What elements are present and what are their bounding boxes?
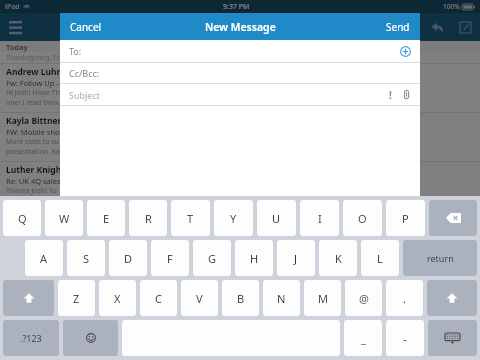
staticText: O — [358, 211, 367, 226]
button[interactable]: Send — [376, 14, 420, 40]
staticText: C — [155, 291, 162, 306]
staticText: I — [318, 211, 322, 226]
staticText: W — [59, 211, 70, 226]
button[interactable]: R — [129, 200, 167, 236]
staticText: R — [145, 211, 152, 226]
button[interactable]: K — [319, 240, 357, 276]
staticText: FW: Mobile show — [6, 127, 66, 137]
staticText: K — [335, 251, 342, 266]
button[interactable]: _ — [344, 320, 382, 356]
button[interactable]: To: — [60, 40, 420, 62]
button[interactable]: Cancel — [60, 14, 112, 40]
button[interactable]: G — [193, 240, 231, 276]
button[interactable]: O — [343, 200, 382, 236]
button[interactable]: V — [181, 280, 218, 316]
button[interactable]: - — [386, 320, 424, 356]
button[interactable]: Menu — [4, 16, 26, 38]
staticText: Andrew Luhmann — [6, 66, 82, 78]
staticText: B — [237, 291, 245, 306]
button[interactable]: D — [109, 240, 147, 276]
staticText: Q — [18, 211, 27, 226]
button[interactable]: .?123 — [3, 320, 59, 356]
button[interactable]: Subject — [60, 84, 420, 105]
staticText: 9:37 PM — [223, 2, 250, 12]
button[interactable]: Backspace — [429, 200, 477, 236]
button[interactable]: F — [151, 240, 189, 276]
staticText: ! — [389, 88, 392, 101]
staticText: J — [294, 251, 298, 266]
button[interactable]: X — [99, 280, 136, 316]
staticText: Send — [386, 20, 410, 34]
staticText: Luther Knight — [6, 164, 65, 176]
button[interactable]: Kayla Bittner — [0, 113, 480, 161]
staticText: 100% — [443, 2, 460, 11]
staticText: Cancel — [70, 20, 102, 34]
button[interactable]: Q — [3, 200, 41, 236]
staticText: L — [377, 251, 383, 266]
button[interactable]: @ — [345, 280, 382, 316]
button[interactable]: J — [277, 240, 315, 276]
staticText: N — [277, 291, 286, 306]
button[interactable]: . — [386, 280, 423, 316]
button[interactable]: P — [386, 200, 425, 236]
button[interactable]: return — [403, 240, 477, 276]
staticText: E — [103, 211, 110, 226]
button[interactable]: Add recipient — [397, 43, 413, 59]
button[interactable]: Shift — [3, 280, 54, 316]
staticText: - — [403, 331, 407, 346]
button[interactable]: Delete — [399, 17, 419, 37]
button[interactable]: Nash DiMarco — [0, 211, 480, 249]
button[interactable]: U — [257, 200, 296, 236]
staticText: Thanksgiving, Fri — [6, 53, 62, 63]
staticText: _ — [361, 331, 366, 346]
button[interactable]: E — [87, 200, 125, 236]
button[interactable]: Cc/Bcc: — [60, 63, 420, 83]
staticText: Thanks Josh! Tu — [6, 186, 57, 196]
button[interactable]: Attach file — [400, 88, 413, 101]
button[interactable]: Z — [58, 280, 95, 316]
button[interactable]: I — [300, 200, 339, 236]
staticText: possible - can yo — [6, 196, 61, 206]
staticText: one! I read throu — [6, 98, 62, 108]
button[interactable]: M — [304, 280, 341, 316]
staticText: Y — [230, 211, 237, 226]
staticText: V — [196, 291, 203, 306]
staticText: Hi Josh! Hope Th — [6, 88, 61, 98]
staticText: P — [402, 211, 409, 226]
staticText: return — [427, 252, 454, 264]
button[interactable]: Compose — [455, 17, 475, 37]
button[interactable]: W — [45, 200, 83, 236]
staticText: S — [83, 251, 90, 266]
button[interactable]: S — [67, 240, 105, 276]
button[interactable]: Reply — [427, 17, 447, 37]
button[interactable]: Y — [214, 200, 253, 236]
staticText: Z — [73, 291, 80, 306]
button[interactable]: N — [263, 280, 300, 316]
staticText: New Message — [205, 20, 276, 34]
staticText: Kayla Bittner — [6, 115, 62, 127]
button[interactable]: B — [222, 280, 259, 316]
staticText: Fw: Follow Up - Q — [6, 78, 67, 88]
button[interactable]: Mark priority — [384, 88, 397, 101]
button[interactable]: Luther Knight — [0, 162, 480, 210]
button[interactable]: H — [235, 240, 273, 276]
button[interactable]: Hide keyboard — [428, 320, 477, 356]
staticText: A — [40, 251, 48, 266]
staticText: . — [403, 291, 406, 306]
staticText: FW: MaaS360 - — [6, 225, 60, 235]
button[interactable]: Shift — [427, 280, 477, 316]
staticText: Cc/Bcc: — [69, 67, 100, 79]
button[interactable]: T — [171, 200, 210, 236]
staticText: Nash DiMarco — [6, 213, 66, 225]
staticText: F — [167, 251, 173, 266]
button[interactable]: C — [140, 280, 177, 316]
button[interactable]: A — [25, 240, 63, 276]
staticText: H — [250, 251, 259, 266]
button[interactable]: Andrew Luhmann — [0, 64, 480, 112]
staticText: T — [187, 211, 194, 226]
button[interactable]: Emoji — [63, 320, 118, 356]
button[interactable]: L — [361, 240, 399, 276]
staticText: G — [208, 251, 217, 266]
